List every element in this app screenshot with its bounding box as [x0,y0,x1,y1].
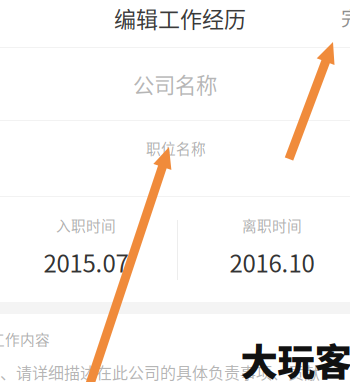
staticText: 工作内容 [0,328,50,350]
staticText: 2015.07 [43,245,128,279]
staticText: 职位名称 [146,137,206,159]
button[interactable]: 入职时间 [1,197,171,297]
button[interactable]: 离职时间 [187,197,350,297]
button[interactable]: 公司名称 [0,48,350,120]
button[interactable]: 职位名称 [1,111,350,185]
button[interactable]: 工作内容 [0,314,350,382]
button[interactable]: 完成 [341,0,350,39]
staticText: 2016.10 [229,245,314,279]
staticText: 入职时间 [56,214,116,236]
staticText: 离职时间 [242,214,302,236]
staticText: 完成 [341,2,350,31]
staticText: 大玩客 [240,333,350,382]
staticText: 1、请详细描述在此公司的具体负责事项、贡献 [0,360,320,382]
staticText: 编辑工作经历 [114,2,246,34]
staticText: 公司名称 [133,69,217,99]
